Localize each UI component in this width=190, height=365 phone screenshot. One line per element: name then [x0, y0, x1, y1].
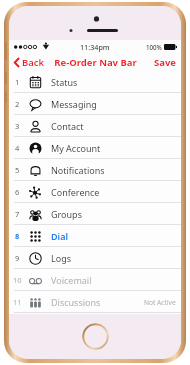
staticText: 7: [15, 209, 20, 219]
button[interactable]: Home: [82, 323, 109, 350]
staticText: 10: [13, 275, 22, 285]
button[interactable]: 6: [9, 181, 181, 203]
button[interactable]: 4: [9, 137, 181, 159]
staticText: 100%: [146, 43, 162, 51]
staticText: 11:34pm: [80, 42, 110, 52]
staticText: My Account: [51, 142, 101, 154]
staticText: Contact: [51, 120, 84, 132]
staticText: Save: [154, 56, 177, 69]
staticText: Notifications: [51, 164, 105, 176]
staticText: Back: [22, 56, 45, 69]
staticText: Not Active: [144, 298, 176, 307]
staticText: 1: [15, 77, 20, 87]
button[interactable]: 10: [9, 269, 181, 291]
staticText: 4: [15, 143, 20, 153]
button[interactable]: Save: [150, 54, 181, 71]
staticText: Logs: [51, 252, 72, 264]
staticText: 5: [15, 165, 20, 175]
staticText: 3: [15, 121, 20, 131]
staticText: 2: [15, 99, 20, 109]
button[interactable]: 2: [9, 93, 181, 115]
button[interactable]: Back: [12, 54, 47, 71]
staticText: Dial: [51, 230, 68, 242]
staticText: Messaging: [51, 98, 97, 110]
button[interactable]: 11: [9, 291, 181, 313]
staticText: Discussions: [51, 296, 101, 308]
staticText: 9: [15, 253, 20, 263]
button[interactable]: 3: [9, 115, 181, 137]
button[interactable]: 9: [9, 247, 181, 269]
staticText: Voicemail: [51, 274, 92, 286]
staticText: Status: [51, 76, 78, 88]
staticText: 8: [15, 231, 20, 241]
button[interactable]: 8: [9, 225, 181, 247]
staticText: Conference: [51, 186, 100, 198]
staticText: Re-Order Nav Bar: [54, 56, 137, 69]
staticText: 11: [13, 297, 22, 307]
staticText: Groups: [51, 208, 82, 220]
button[interactable]: 5: [9, 159, 181, 181]
staticText: 6: [15, 187, 20, 197]
button[interactable]: 7: [9, 203, 181, 225]
button[interactable]: 1: [9, 71, 181, 93]
